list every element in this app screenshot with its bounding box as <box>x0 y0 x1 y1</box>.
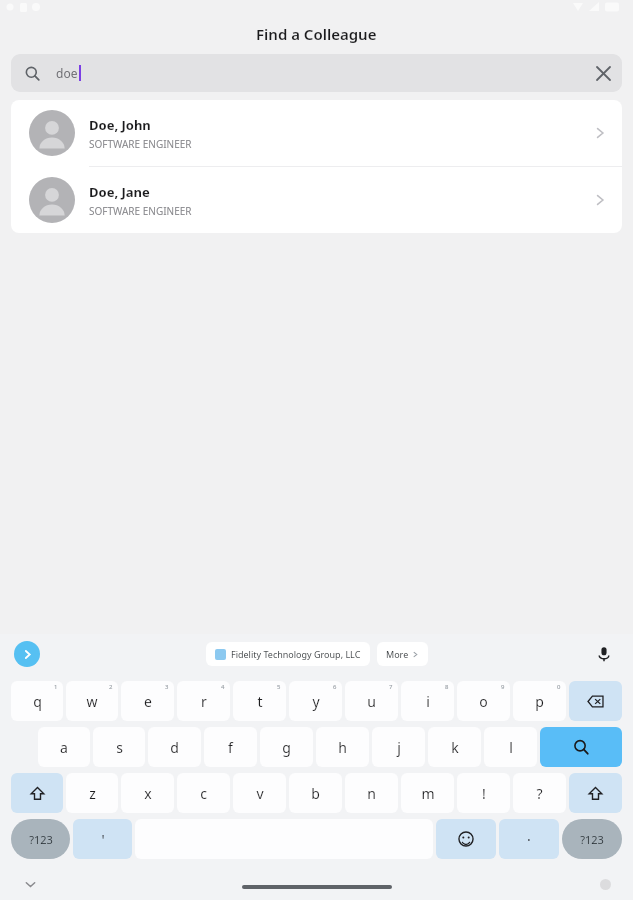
button[interactable]: b <box>289 773 342 813</box>
staticText: · <box>527 830 531 849</box>
button[interactable]: j <box>372 727 425 767</box>
button[interactable]: More <box>386 642 419 666</box>
button[interactable]: Clear search <box>584 54 622 92</box>
staticText: doe <box>56 65 78 81</box>
button[interactable]: Backspace <box>569 681 622 721</box>
button[interactable]: Shift <box>11 773 63 813</box>
staticText: m <box>421 784 435 803</box>
button[interactable]: y <box>289 681 342 721</box>
staticText: f <box>228 738 233 757</box>
staticText: q <box>33 692 42 711</box>
button[interactable]: ' <box>73 819 132 859</box>
staticText: r <box>201 692 207 711</box>
staticText: p <box>535 692 544 711</box>
staticText: b <box>311 784 320 803</box>
staticText: 6 <box>333 683 337 691</box>
staticText: t <box>257 692 263 711</box>
button[interactable]: a <box>38 727 90 767</box>
button[interactable]: c <box>177 773 230 813</box>
staticText: 0 <box>557 683 561 691</box>
staticText: o <box>479 692 488 711</box>
staticText: Find a Colleague <box>256 24 377 44</box>
staticText: g <box>282 738 291 757</box>
button[interactable]: t <box>233 681 286 721</box>
button[interactable]: d <box>148 727 201 767</box>
button[interactable]: u <box>345 681 398 721</box>
staticText: d <box>170 738 179 757</box>
button[interactable]: h <box>316 727 369 767</box>
button[interactable]: Search <box>540 727 622 767</box>
button[interactable]: v <box>233 773 286 813</box>
staticText: ? <box>536 784 543 803</box>
staticText: l <box>509 738 513 757</box>
staticText: SOFTWARE ENGINEER <box>89 204 192 218</box>
staticText: ' <box>101 830 105 849</box>
staticText: 5 <box>277 683 281 691</box>
staticText: j <box>397 738 401 757</box>
button[interactable]: doe <box>11 54 622 92</box>
staticText: ?123 <box>29 832 53 847</box>
button[interactable]: Voice input <box>589 639 619 669</box>
button[interactable]: ?123 <box>562 819 622 859</box>
button[interactable]: i <box>401 681 454 721</box>
button[interactable]: Hide keyboard <box>20 874 40 894</box>
button[interactable]: w <box>66 681 118 721</box>
staticText: ! <box>482 784 486 803</box>
button[interactable]: Doe, Jane <box>11 167 622 233</box>
button[interactable]: r <box>177 681 230 721</box>
staticText: Doe, John <box>89 116 151 134</box>
staticText: k <box>451 738 459 757</box>
button[interactable]: Keyboard settings <box>597 876 613 892</box>
staticText: v <box>256 784 264 803</box>
staticText: i <box>426 692 430 711</box>
button[interactable]: n <box>345 773 398 813</box>
staticText: 3 <box>165 683 169 691</box>
button[interactable]: ! <box>457 773 510 813</box>
button[interactable]: e <box>121 681 174 721</box>
button[interactable]: q <box>11 681 63 721</box>
staticText: n <box>367 784 376 803</box>
staticText: ?123 <box>580 832 604 847</box>
staticText: 4 <box>221 683 225 691</box>
staticText: w <box>86 692 98 711</box>
button[interactable]: x <box>121 773 174 813</box>
staticText: Doe, Jane <box>89 183 150 201</box>
button[interactable]: m <box>401 773 454 813</box>
staticText: h <box>338 738 347 757</box>
button[interactable]: k <box>428 727 481 767</box>
button[interactable]: g <box>260 727 313 767</box>
staticText: 8 <box>445 683 449 691</box>
button[interactable]: ? <box>513 773 566 813</box>
button[interactable]: l <box>484 727 537 767</box>
button[interactable]: s <box>93 727 145 767</box>
staticText: c <box>200 784 207 803</box>
staticText: a <box>60 738 68 757</box>
staticText: u <box>367 692 376 711</box>
staticText: 7 <box>389 683 393 691</box>
staticText: SOFTWARE ENGINEER <box>89 137 192 151</box>
staticText: More <box>386 648 409 660</box>
staticText: x <box>144 784 152 803</box>
button[interactable]: z <box>66 773 118 813</box>
staticText: Fidelity Technology Group, LLC <box>231 648 361 660</box>
staticText: z <box>89 784 96 803</box>
staticText: 9 <box>501 683 505 691</box>
button[interactable]: · <box>499 819 559 859</box>
button[interactable]: Shift <box>569 773 622 813</box>
staticText: s <box>116 738 123 757</box>
button[interactable]: Doe, John <box>11 100 622 166</box>
staticText: e <box>144 692 152 711</box>
staticText: 2 <box>109 683 113 691</box>
button[interactable]: p <box>513 681 566 721</box>
button[interactable]: Expand toolbar <box>14 641 40 667</box>
button[interactable]: ?123 <box>11 819 70 859</box>
button[interactable]: f <box>204 727 257 767</box>
staticText: y <box>312 692 320 711</box>
button[interactable]: o <box>457 681 510 721</box>
button[interactable]: Fidelity Technology Group, LLC <box>215 642 361 666</box>
staticText: 1 <box>54 683 58 691</box>
button[interactable]: Emoji <box>436 819 496 859</box>
